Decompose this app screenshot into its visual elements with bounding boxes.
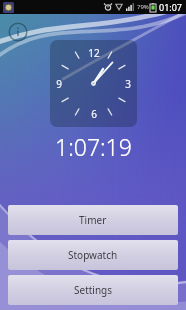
staticText: 9 — [56, 77, 62, 91]
staticText: 01:07 — [159, 1, 183, 13]
button[interactable]: Stopwatch — [8, 240, 178, 270]
staticText: 3 — [125, 77, 131, 91]
staticText: 1:07:19 — [55, 131, 132, 162]
staticText: 79% — [137, 3, 149, 11]
staticText: 6 — [91, 107, 97, 121]
staticText: Timer — [79, 213, 107, 227]
staticText: 12 — [88, 46, 100, 60]
button[interactable]: Analog clock — [50, 40, 137, 127]
button[interactable]: About — [8, 22, 28, 42]
button[interactable]: Settings — [8, 275, 178, 305]
staticText: Settings — [74, 283, 113, 297]
button[interactable]: Timer — [8, 205, 178, 235]
staticText: Stopwatch — [68, 248, 118, 262]
